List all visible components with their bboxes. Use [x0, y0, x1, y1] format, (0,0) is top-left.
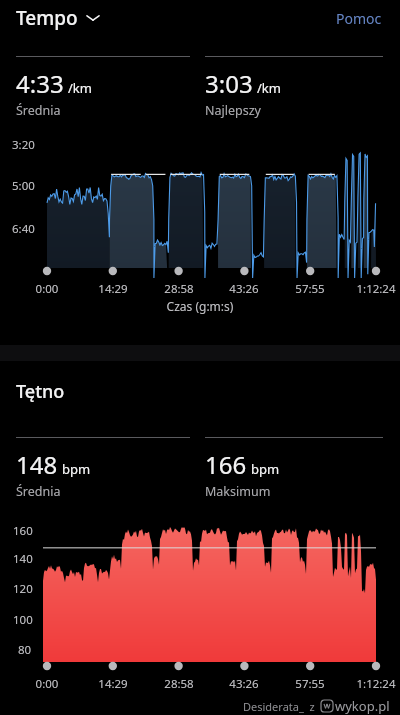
staticText: 3:03 [205, 67, 253, 100]
button[interactable]: Pomoc [332, 5, 386, 32]
button[interactable]: 148 [16, 437, 190, 500]
staticText: Desiderata_ z [243, 699, 321, 714]
staticText: Średnia [16, 483, 61, 500]
staticText: Czas (g:m:s) [0, 298, 400, 314]
staticText: 43:26 [211, 281, 277, 297]
staticText: wykop.pl [335, 697, 390, 715]
staticText: 57:55 [277, 676, 343, 692]
staticText: 14:29 [80, 281, 146, 297]
staticText: 43:26 [211, 676, 277, 692]
staticText: 28:58 [146, 281, 212, 297]
button[interactable]: Tętno [16, 379, 65, 404]
staticText: 0:00 [14, 281, 80, 297]
staticText: 6:40 [12, 221, 35, 237]
staticText: 148 [16, 448, 58, 481]
staticText: 100 [13, 612, 33, 628]
staticText: 57:55 [277, 281, 343, 297]
staticText: 28:58 [146, 676, 212, 692]
staticText: bpm [251, 460, 280, 478]
staticText: Średnia [16, 102, 61, 119]
staticText: 160 [13, 523, 33, 539]
staticText: bpm [62, 460, 91, 478]
staticText: Najlepszy [205, 102, 261, 119]
button[interactable]: 3:03 [205, 56, 383, 119]
staticText: 140 [13, 551, 33, 567]
staticText: 4:33 [16, 67, 64, 100]
staticText: 166 [205, 448, 247, 481]
staticText: Maksimum [205, 483, 271, 500]
staticText: 0:00 [14, 676, 80, 692]
button[interactable]: 4:33 [16, 56, 190, 119]
staticText: 1:12:24 [343, 676, 400, 692]
staticText: 1:12:24 [343, 281, 400, 297]
staticText: /km [257, 79, 281, 97]
staticText: 80 [18, 642, 32, 658]
staticText: 3:20 [12, 137, 35, 153]
staticText: 14:29 [80, 676, 146, 692]
button[interactable]: 166 [205, 437, 383, 500]
staticText: 120 [13, 581, 33, 597]
staticText: /km [68, 79, 92, 97]
staticText: Pomoc [336, 9, 382, 28]
staticText: Tempo [16, 5, 78, 31]
staticText: 5:00 [12, 178, 35, 194]
button[interactable]: Tempo [16, 5, 106, 31]
